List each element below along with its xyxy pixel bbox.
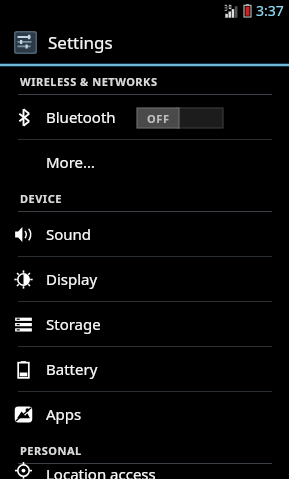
staticText: Apps: [46, 404, 82, 424]
button[interactable]: Storage: [0, 302, 289, 346]
staticText: Battery: [46, 359, 98, 379]
staticText: Settings: [48, 31, 113, 54]
button[interactable]: Bluetooth: [0, 95, 289, 139]
staticText: 3:37: [256, 1, 284, 20]
button[interactable]: Apps: [0, 392, 289, 436]
button[interactable]: Sound: [0, 212, 289, 256]
staticText: Location access: [46, 464, 156, 479]
staticText: DEVICE: [20, 191, 62, 206]
button[interactable]: Location access: [0, 464, 289, 479]
staticText: More…: [46, 152, 95, 172]
button[interactable]: Battery: [0, 347, 289, 391]
staticText: PERSONAL: [20, 443, 82, 458]
button[interactable]: Bluetooth off: [137, 107, 223, 128]
staticText: Sound: [46, 224, 92, 244]
button[interactable]: More…: [0, 140, 289, 184]
staticText: Bluetooth: [46, 107, 116, 127]
staticText: Display: [46, 269, 98, 289]
button[interactable]: Display: [0, 257, 289, 301]
button[interactable]: Settings: [0, 21, 289, 63]
staticText: Storage: [46, 314, 101, 334]
staticText: OFF: [147, 111, 170, 126]
staticText: WIRELESS & NETWORKS: [20, 74, 158, 89]
